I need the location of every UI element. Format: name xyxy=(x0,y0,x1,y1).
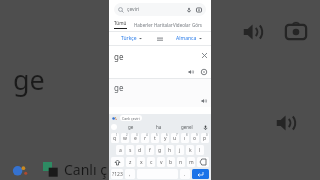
staticText: 2 xyxy=(126,133,128,137)
button[interactable]: Haberler xyxy=(134,19,154,30)
button[interactable]: genel xyxy=(173,122,201,132)
staticText: çeviri xyxy=(127,6,140,13)
staticText: ha xyxy=(156,124,162,130)
button[interactable]: m xyxy=(187,157,195,167)
button[interactable]: ı xyxy=(181,133,189,143)
staticText: Almanca xyxy=(176,35,197,42)
staticText: 6 xyxy=(166,133,168,137)
button[interactable]: Shift xyxy=(111,157,124,167)
button[interactable]: Canlı çeviri xyxy=(120,115,142,121)
staticText: ge xyxy=(13,61,45,98)
staticText: n xyxy=(179,159,183,166)
staticText: ı xyxy=(184,135,186,142)
staticText: m xyxy=(189,159,194,166)
staticText: e xyxy=(134,135,137,142)
staticText: v xyxy=(160,159,163,166)
button[interactable]: s xyxy=(126,145,134,155)
staticText: Tümü xyxy=(114,20,127,26)
staticText: x xyxy=(140,159,143,166)
staticText: Türkçe xyxy=(121,35,137,42)
staticText: k xyxy=(189,147,192,154)
button[interactable]: Almanca xyxy=(167,32,211,45)
staticText: Haritalar xyxy=(154,22,173,28)
staticText: 9 xyxy=(196,133,198,137)
button[interactable]: Görs xyxy=(192,19,211,30)
button[interactable]: Voice input xyxy=(201,123,209,131)
staticText: 8 xyxy=(186,133,188,137)
staticText: 0 xyxy=(206,133,208,137)
staticText: Görs xyxy=(192,22,203,28)
button[interactable]: Enter xyxy=(192,169,209,179)
button[interactable]: v xyxy=(157,157,165,167)
button[interactable]: More xyxy=(111,124,117,130)
staticText: b xyxy=(169,159,173,166)
button[interactable]: a xyxy=(116,145,124,155)
staticText: c xyxy=(150,159,153,166)
staticText: w xyxy=(123,135,127,142)
staticText: 1 xyxy=(116,133,118,137)
button[interactable]: Camera xyxy=(283,19,309,45)
button[interactable]: h xyxy=(166,145,174,155)
button[interactable]: g xyxy=(156,145,164,155)
button[interactable]: l xyxy=(196,145,204,155)
button[interactable]: Listen translation xyxy=(273,110,299,136)
button[interactable]: t xyxy=(151,133,159,143)
button[interactable]: n xyxy=(177,157,185,167)
button[interactable]: ?123 xyxy=(111,169,123,179)
staticText: Haberler xyxy=(134,22,153,28)
button[interactable]: f xyxy=(146,145,154,155)
button[interactable]: , xyxy=(125,169,135,179)
button[interactable]: Canlı ç xyxy=(12,160,107,179)
button[interactable]: Tümü xyxy=(114,19,134,30)
button[interactable]: e xyxy=(131,133,139,143)
button[interactable]: Listen translation xyxy=(199,96,208,105)
button[interactable]: Backspace xyxy=(197,157,209,167)
staticText: h xyxy=(168,147,172,154)
staticText: a xyxy=(119,147,122,154)
button[interactable]: ha xyxy=(145,122,173,132)
button[interactable]: j xyxy=(176,145,184,155)
button[interactable]: ge xyxy=(117,122,145,132)
button[interactable]: b xyxy=(167,157,175,167)
staticText: , xyxy=(129,171,131,178)
button[interactable]: p xyxy=(201,133,209,143)
button[interactable]: z xyxy=(126,157,135,167)
staticText: Videolar xyxy=(173,22,191,28)
button[interactable]: c xyxy=(147,157,155,167)
staticText: ge xyxy=(128,124,134,130)
button[interactable]: çeviri xyxy=(114,3,206,16)
button[interactable]: r xyxy=(141,133,149,143)
staticText: genel xyxy=(181,124,193,130)
button[interactable]: x xyxy=(137,157,145,167)
button[interactable]: u xyxy=(171,133,179,143)
staticText: Canlı ç xyxy=(64,160,107,179)
button[interactable]: Haritalar xyxy=(154,19,173,30)
staticText: 4 xyxy=(146,133,148,137)
button[interactable]: Listen xyxy=(186,67,195,76)
button[interactable]: Swap languages xyxy=(153,32,167,45)
button[interactable]: Türkçe xyxy=(109,32,153,45)
button[interactable]: y xyxy=(161,133,169,143)
staticText: p xyxy=(203,135,207,142)
button[interactable]: . xyxy=(180,169,190,179)
button[interactable]: Listen xyxy=(240,19,266,45)
button[interactable]: q xyxy=(111,133,119,143)
button[interactable]: o xyxy=(191,133,199,143)
button[interactable]: w xyxy=(121,133,129,143)
staticText: y xyxy=(164,135,167,142)
button[interactable]: k xyxy=(186,145,194,155)
button[interactable]: d xyxy=(136,145,144,155)
staticText: o xyxy=(193,135,197,142)
staticText: 7 xyxy=(176,133,178,137)
staticText: ge xyxy=(114,51,124,62)
staticText: d xyxy=(138,147,142,154)
staticText: z xyxy=(129,159,132,166)
staticText: u xyxy=(173,135,177,142)
button[interactable]: Videolar xyxy=(173,19,192,30)
staticText: 5 xyxy=(156,133,158,137)
staticText: 3 xyxy=(136,133,138,137)
staticText: l xyxy=(199,147,201,154)
button[interactable]: Share xyxy=(199,67,208,76)
button[interactable]: Clear xyxy=(200,51,208,59)
